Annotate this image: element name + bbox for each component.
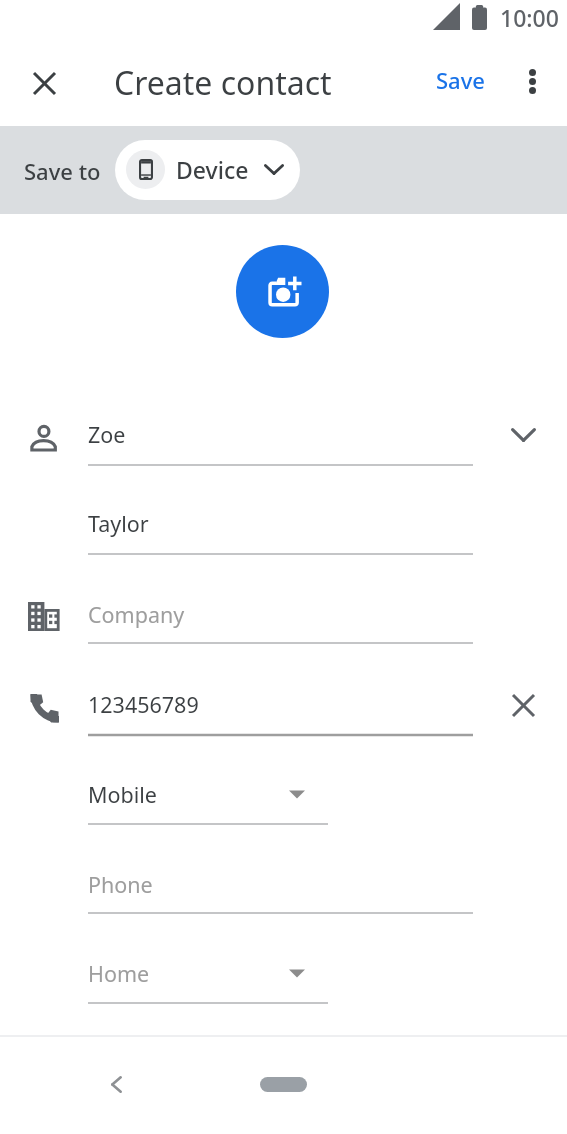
staticText: Zoe [88,420,126,449]
button[interactable]: First name [88,409,473,461]
button[interactable]: Close [22,61,66,105]
staticText: Mobile [88,780,157,809]
button[interactable]: Back [94,1062,138,1106]
button[interactable]: Choose label [275,772,319,816]
staticText: 10:00 [500,2,559,33]
button[interactable]: Last name [88,498,473,550]
staticText: Company [88,600,185,629]
staticText: Home [88,959,150,988]
staticText: Device [176,154,249,185]
button[interactable]: Expand name fields [501,413,545,457]
button[interactable]: Add photo [236,245,329,338]
staticText: Save to [24,156,101,186]
button[interactable]: Clear phone number [501,683,545,727]
button[interactable]: More options [510,59,554,103]
button[interactable]: Home [260,1077,307,1092]
staticText: Create contact [114,61,332,105]
staticText: Taylor [88,509,149,538]
button[interactable]: Save [427,59,494,101]
button[interactable]: Company [88,589,473,641]
staticText: 123456789 [88,690,199,719]
button[interactable]: Phone label Mobile [88,769,328,821]
staticText: Save [436,65,485,95]
button[interactable]: Device [115,140,300,200]
button[interactable]: Phone number [88,679,473,731]
staticText: Phone [88,870,153,899]
button[interactable]: Choose label [275,951,319,995]
button[interactable]: Phone [88,859,473,911]
button[interactable]: Phone label Home [88,948,328,1000]
